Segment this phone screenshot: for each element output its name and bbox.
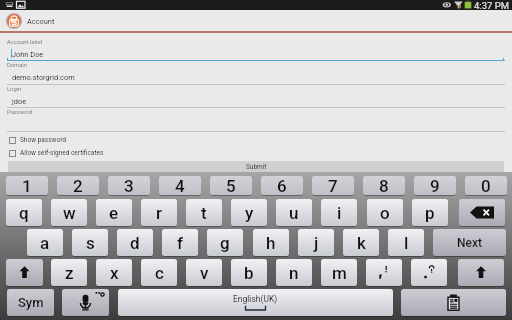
staticText: s bbox=[86, 233, 95, 253]
button[interactable]: Allow self-signed certificates bbox=[0, 147, 512, 159]
staticText: jdoe bbox=[12, 97, 27, 106]
staticText: q bbox=[19, 203, 29, 223]
staticText: w bbox=[63, 203, 76, 223]
button[interactable]: Account bbox=[0, 10, 512, 31]
button[interactable]: c bbox=[141, 259, 177, 286]
button[interactable]: g bbox=[207, 229, 243, 256]
staticText: b bbox=[244, 263, 254, 283]
staticText: Submit bbox=[246, 163, 267, 171]
button[interactable]: 2 bbox=[57, 176, 99, 195]
staticText: Show password bbox=[20, 136, 66, 144]
button[interactable]: a bbox=[27, 229, 63, 256]
staticText: 3 bbox=[124, 176, 134, 195]
button[interactable]: p bbox=[412, 199, 448, 226]
staticText: 7 bbox=[328, 176, 338, 195]
staticText: v bbox=[200, 263, 209, 283]
button[interactable]: Shift bbox=[458, 259, 504, 286]
staticText: f bbox=[177, 233, 184, 253]
button[interactable] bbox=[0, 107, 512, 132]
button[interactable]: f bbox=[162, 229, 198, 256]
staticText: 8 bbox=[379, 176, 389, 195]
button[interactable]: o bbox=[367, 199, 403, 226]
staticText: i bbox=[337, 203, 342, 223]
button[interactable]: 9 bbox=[414, 176, 456, 195]
staticText: u bbox=[289, 203, 299, 223]
button[interactable]: s bbox=[72, 229, 108, 256]
staticText: Password bbox=[7, 109, 33, 116]
staticText: 4:37 PM bbox=[474, 0, 509, 10]
staticText: 1 bbox=[22, 176, 32, 195]
staticText: l bbox=[404, 233, 409, 253]
button[interactable]: 0 bbox=[465, 176, 507, 195]
staticText: t bbox=[201, 203, 207, 223]
staticText: 4 bbox=[175, 176, 185, 195]
button[interactable]: Shift bbox=[6, 259, 43, 286]
button[interactable]: Voice input bbox=[62, 289, 109, 316]
button[interactable]: h bbox=[253, 229, 289, 256]
staticText: e bbox=[109, 203, 119, 223]
staticText: Login bbox=[7, 86, 22, 93]
button[interactable]: Clipboard bbox=[401, 289, 506, 316]
button[interactable]: z bbox=[51, 259, 87, 286]
button[interactable]: d bbox=[117, 229, 153, 256]
staticText: demo.storgrid.com bbox=[12, 73, 75, 82]
staticText: Account label bbox=[7, 39, 43, 46]
staticText: 6 bbox=[277, 176, 287, 195]
button[interactable]: Submit bbox=[8, 161, 504, 172]
staticText: r bbox=[156, 203, 163, 223]
staticText: 9 bbox=[430, 176, 440, 195]
staticText: John Doe bbox=[12, 50, 44, 59]
button[interactable] bbox=[0, 60, 512, 84]
button[interactable]: u bbox=[276, 199, 312, 226]
button[interactable]: r bbox=[141, 199, 177, 226]
button[interactable]: 8 bbox=[363, 176, 405, 195]
button[interactable]: q bbox=[6, 199, 42, 226]
button[interactable]: b bbox=[231, 259, 267, 286]
button[interactable]: 3 bbox=[108, 176, 150, 195]
staticText: 2 bbox=[73, 176, 83, 195]
button[interactable]: 5 bbox=[210, 176, 252, 195]
button[interactable]: 4 bbox=[159, 176, 201, 195]
staticText: z bbox=[65, 263, 74, 283]
button[interactable]: v bbox=[186, 259, 222, 286]
button[interactable]: t bbox=[186, 199, 222, 226]
staticText: o bbox=[380, 203, 390, 223]
button[interactable]: m bbox=[321, 259, 357, 286]
button[interactable]: Next bbox=[433, 229, 506, 256]
staticText: Sym bbox=[18, 295, 44, 310]
staticText: y bbox=[245, 203, 254, 223]
button[interactable]: English(UK) bbox=[118, 289, 393, 316]
button[interactable]: x bbox=[96, 259, 132, 286]
staticText: p bbox=[425, 203, 435, 223]
button[interactable]: i bbox=[321, 199, 357, 226]
button[interactable]: 6 bbox=[261, 176, 303, 195]
staticText: Domain bbox=[7, 62, 27, 69]
staticText: Allow self-signed certificates bbox=[20, 149, 104, 157]
button[interactable]: j bbox=[298, 229, 334, 256]
staticText: j bbox=[314, 233, 319, 253]
staticText: h bbox=[266, 233, 276, 253]
button[interactable]: n bbox=[276, 259, 312, 286]
button[interactable]: e bbox=[96, 199, 132, 226]
button[interactable]: Sym bbox=[7, 289, 54, 316]
button[interactable]: 7 bbox=[312, 176, 354, 195]
staticText: a bbox=[40, 233, 50, 253]
button[interactable] bbox=[0, 37, 512, 61]
button[interactable] bbox=[366, 259, 402, 286]
button[interactable] bbox=[411, 259, 447, 286]
button[interactable]: y bbox=[231, 199, 267, 226]
staticText: n bbox=[289, 263, 299, 283]
staticText: 5 bbox=[226, 176, 236, 195]
staticText: g bbox=[220, 233, 230, 253]
staticText: x bbox=[110, 263, 119, 283]
button[interactable]: k bbox=[343, 229, 379, 256]
button[interactable]: w bbox=[51, 199, 87, 226]
staticText: m bbox=[332, 263, 347, 283]
staticText: Account bbox=[27, 17, 55, 26]
staticText: c bbox=[155, 263, 164, 283]
button[interactable]: Show password bbox=[0, 134, 512, 146]
button[interactable]: Backspace bbox=[459, 199, 505, 226]
button[interactable] bbox=[0, 84, 512, 108]
button[interactable]: 1 bbox=[6, 176, 48, 195]
button[interactable]: l bbox=[388, 229, 424, 256]
